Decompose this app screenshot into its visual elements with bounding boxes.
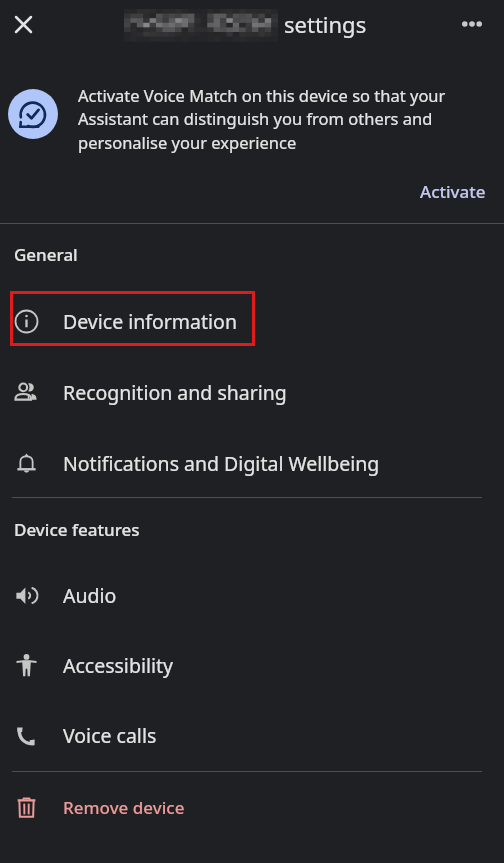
button[interactable]: Device information — [0, 291, 504, 351]
staticText: General — [14, 243, 78, 266]
button[interactable]: More options — [449, 1, 495, 47]
staticText: Device features — [14, 518, 140, 541]
button[interactable]: Audio — [0, 565, 504, 625]
button[interactable]: Remove device — [0, 777, 504, 837]
staticText: Notifications and Digital Wellbeing — [63, 450, 380, 477]
staticText: Device information — [63, 308, 237, 335]
staticText: Audio — [63, 582, 117, 609]
button[interactable]: Voice calls — [0, 705, 504, 765]
staticText: Activate Voice Match on this device so t… — [78, 84, 478, 154]
staticText: Remove device — [63, 796, 185, 819]
staticText: Recognition and sharing — [63, 379, 287, 406]
button[interactable]: Notifications and Digital Wellbeing — [0, 433, 504, 493]
button[interactable]: Accessibility — [0, 635, 504, 695]
staticText: Accessibility — [63, 652, 173, 679]
staticText: Activate — [420, 180, 486, 203]
button[interactable]: Recognition and sharing — [0, 362, 504, 422]
button[interactable]: Close — [0, 1, 46, 47]
staticText: Voice calls — [63, 722, 157, 749]
staticText: settings — [284, 9, 367, 39]
button[interactable]: Activate — [414, 174, 492, 209]
